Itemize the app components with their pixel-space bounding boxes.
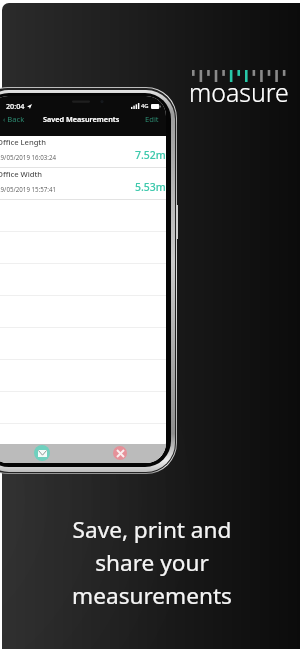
staticText: Save, print and share your measurements	[72, 514, 232, 610]
staticText: 7.52m	[135, 148, 166, 162]
button[interactable]: Office Length	[0, 136, 166, 168]
staticText: 5.53m	[135, 180, 166, 194]
button[interactable]: Share by email	[34, 445, 50, 461]
staticText: ‹ Back	[3, 114, 25, 124]
button[interactable]: Delete	[113, 446, 127, 460]
staticText: moasure	[189, 75, 289, 109]
staticText: Edit	[145, 114, 159, 124]
button[interactable]: Office Width	[0, 168, 166, 200]
staticText: 29/05/2019 16:03:24	[0, 153, 57, 161]
staticText: 4G	[141, 102, 149, 110]
staticText: Office Length	[0, 137, 47, 147]
staticText: 29/05/2019 15:57:41	[0, 185, 57, 193]
other: Moasure	[192, 70, 286, 82]
staticText: 20:04	[6, 101, 25, 111]
button[interactable]: Edit	[145, 114, 159, 124]
staticText: Saved Measurements	[43, 114, 120, 124]
button[interactable]: ‹ Back	[3, 114, 25, 124]
staticText: Office Width	[0, 169, 43, 179]
